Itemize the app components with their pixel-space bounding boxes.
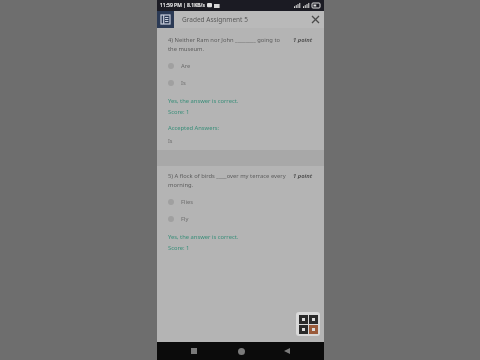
button[interactable]: Floating tools: [296, 312, 320, 336]
button[interactable]: Home: [232, 342, 250, 360]
staticText: Score: 1: [168, 108, 190, 116]
staticText: Are: [181, 62, 191, 70]
button[interactable]: Back: [278, 342, 296, 360]
staticText: Yes, the answer is correct.: [168, 97, 239, 105]
staticText: the museum.: [168, 45, 205, 53]
staticText: Is: [168, 137, 173, 144]
staticText: 1 point: [293, 172, 313, 180]
button[interactable]: Recents: [185, 342, 203, 360]
staticText: Accepted Answers:: [168, 124, 220, 132]
button[interactable]: Are: [157, 59, 324, 73]
staticText: Graded Assignment 5: [182, 15, 307, 24]
staticText: 5) A flock of birds ____over my terrace …: [168, 172, 293, 180]
staticText: 1 point: [293, 36, 313, 44]
button[interactable]: Close: [307, 11, 324, 28]
button[interactable]: Assignment: [157, 11, 174, 28]
staticText: 4) Neither Ram nor John ________ going t…: [168, 36, 293, 44]
staticText: 11:59 PM | 8.1KB/s: [160, 2, 205, 9]
button[interactable]: Flies: [157, 195, 324, 209]
staticText: Is: [181, 79, 186, 87]
staticText: Fly: [181, 215, 189, 223]
staticText: Flies: [181, 198, 194, 206]
button[interactable]: Is: [157, 76, 324, 90]
button[interactable]: Fly: [157, 212, 324, 226]
staticText: Yes, the answer is correct.: [168, 233, 239, 241]
staticText: Score: 1: [168, 244, 190, 252]
staticText: morning.: [168, 181, 194, 189]
